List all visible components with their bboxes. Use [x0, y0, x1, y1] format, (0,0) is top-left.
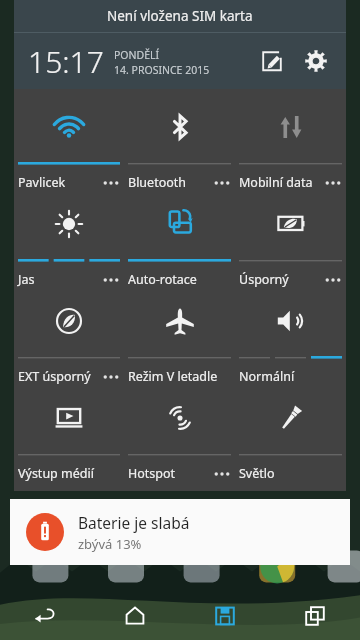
staticText: Výstup médií [18, 465, 94, 482]
button[interactable]: Mobilní data [235, 97, 346, 194]
button[interactable]: Domů [90, 592, 180, 640]
button[interactable]: Upravit [252, 41, 292, 81]
button[interactable]: Jas [14, 194, 124, 291]
staticText: Baterie je slabá [78, 512, 190, 533]
button[interactable]: Auto-rotace [124, 194, 235, 291]
staticText: PONDĚLÍ [114, 48, 160, 62]
staticText: Hotspot [128, 465, 176, 482]
button[interactable]: Normální [235, 291, 346, 388]
staticText: 14. PROSINCE 2015 [114, 63, 210, 77]
button[interactable]: Hotspot [124, 388, 235, 485]
button[interactable]: EXT úsporný [14, 291, 124, 388]
staticText: Světlo [239, 465, 275, 482]
staticText: Bluetooth [128, 174, 187, 191]
button[interactable]: Zpět [0, 592, 90, 640]
button[interactable]: Poslední aplikace [270, 592, 360, 640]
button[interactable]: Nastavení [296, 41, 336, 81]
staticText: Mobilní data [239, 174, 313, 191]
button[interactable]: Rychlá nastavení [180, 592, 270, 640]
staticText: Auto-rotace [128, 271, 197, 288]
staticText: Úsporný [239, 271, 289, 288]
button[interactable]: Výstup médií [14, 388, 124, 485]
button[interactable]: Pavlicek [14, 97, 124, 194]
staticText: Režim V letadle [128, 368, 218, 385]
staticText: Normální [239, 368, 295, 385]
staticText: EXT úsporný [18, 368, 91, 385]
staticText: 15:17 [28, 41, 104, 82]
staticText: Pavlicek [18, 174, 66, 191]
button[interactable]: Bluetooth [124, 97, 235, 194]
staticText: Není vložena SIM karta [107, 7, 253, 25]
button[interactable]: Světlo [235, 388, 346, 485]
button[interactable]: Režim V letadle [124, 291, 235, 388]
button[interactable]: Úsporný [235, 194, 346, 291]
staticText: Jas [18, 271, 35, 288]
button[interactable]: Baterie je slabá [10, 499, 350, 565]
staticText: zbývá 13% [78, 535, 142, 553]
